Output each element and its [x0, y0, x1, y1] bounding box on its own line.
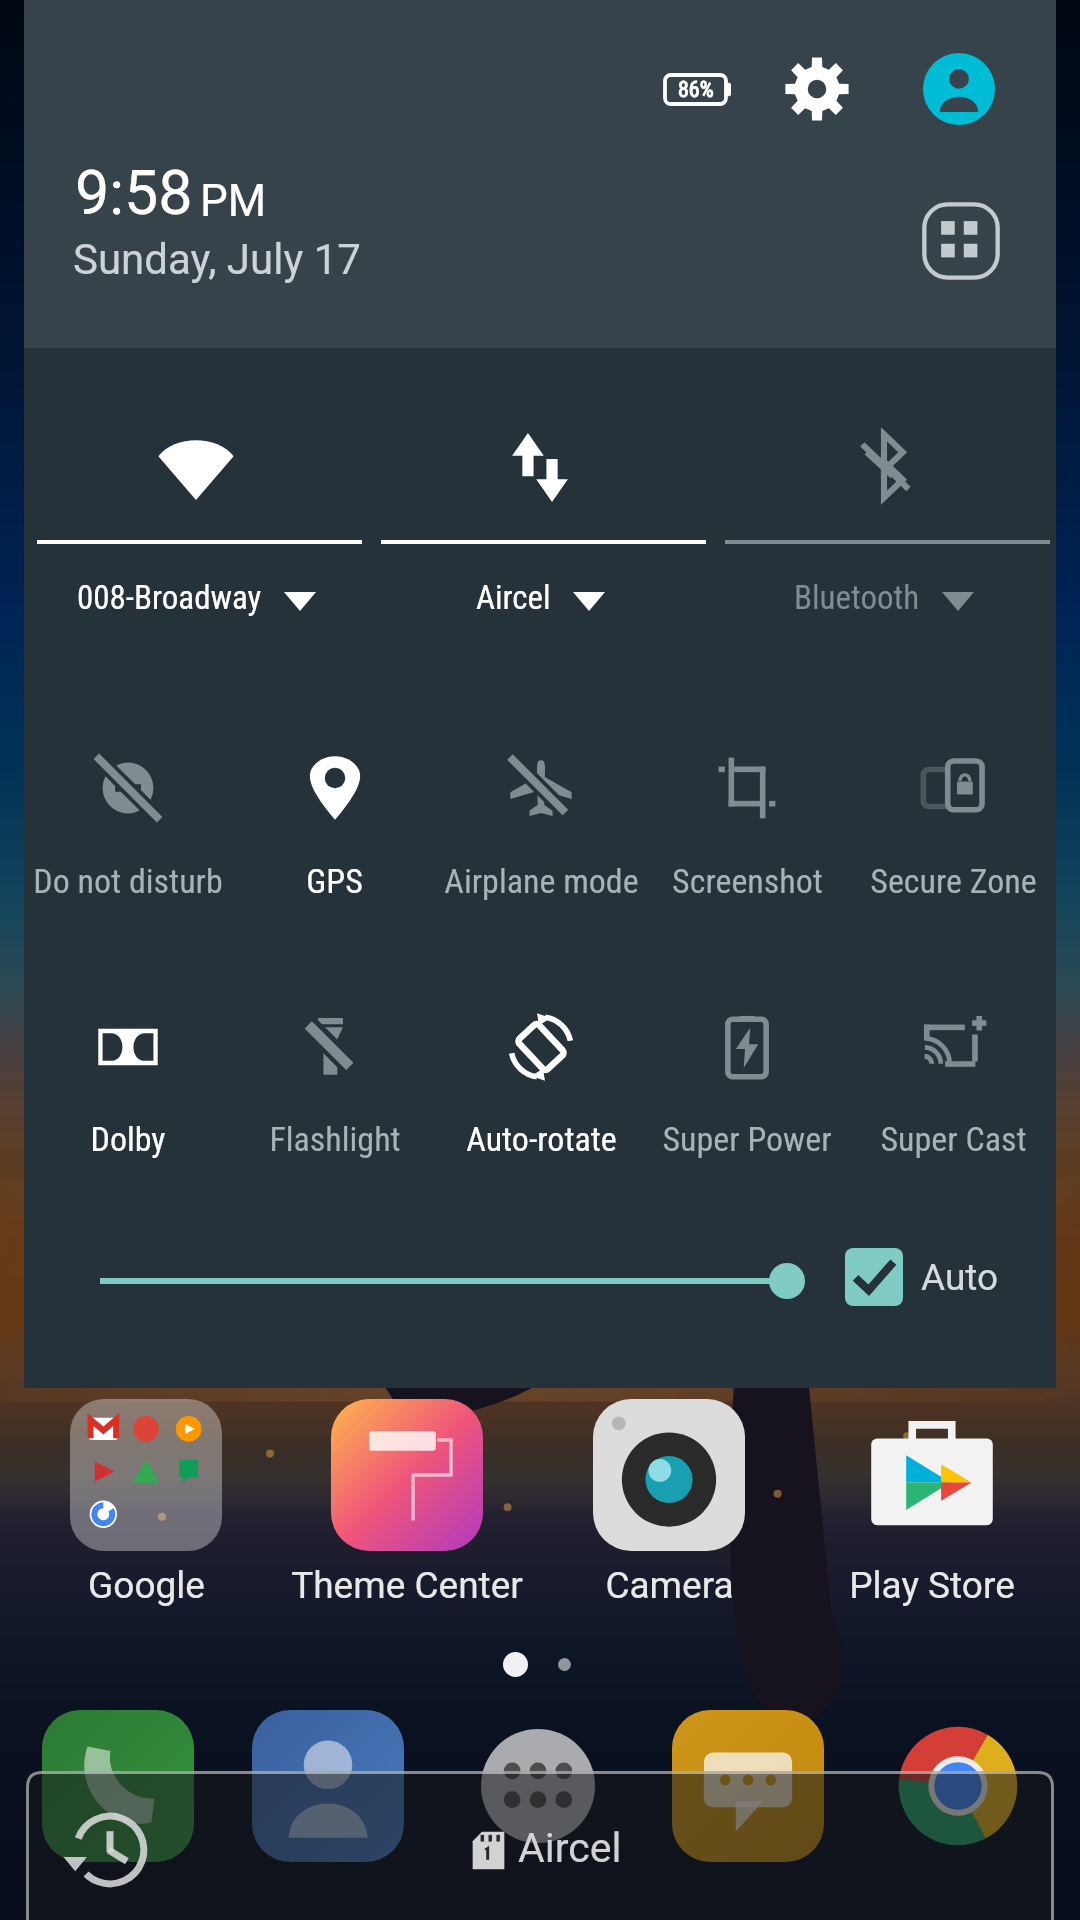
staticText: Airplane mode	[444, 861, 639, 901]
staticText: 9:58	[75, 157, 193, 228]
button[interactable]: Aircel	[368, 348, 712, 638]
button[interactable]: Settings	[772, 44, 862, 134]
button[interactable]: Airplane mode	[438, 755, 644, 918]
button[interactable]: Do not disturb	[24, 755, 231, 918]
button[interactable]: Secure Zone	[850, 755, 1056, 918]
staticText: Screenshot	[672, 861, 823, 901]
staticText: Aircel	[518, 1824, 622, 1872]
staticText: Camera	[605, 1564, 734, 1607]
button[interactable]: Edit quick settings	[911, 191, 1011, 291]
button[interactable]: Auto-rotate	[438, 1014, 644, 1176]
staticText: Auto-rotate	[466, 1119, 617, 1159]
button[interactable]: Google	[70, 1399, 222, 1624]
button[interactable]: Battery 86 percent	[649, 59, 748, 120]
button[interactable]: Bluetooth	[712, 348, 1056, 638]
staticText: Bluetooth	[794, 578, 920, 617]
staticText: Auto	[921, 1256, 999, 1299]
staticText: Play Store	[849, 1564, 1015, 1607]
staticText: Flashlight	[269, 1119, 401, 1159]
button[interactable]: GPS	[231, 755, 438, 918]
staticText: Dolby	[90, 1119, 166, 1159]
staticText: 008-Broadway	[77, 578, 262, 617]
staticText: PM	[200, 175, 267, 227]
button[interactable]: Super Cast	[850, 1014, 1056, 1176]
staticText: GPS	[306, 861, 363, 901]
button[interactable]: Super Power	[644, 1014, 850, 1176]
staticText: Sunday, July 17	[73, 235, 361, 284]
staticText: Super Power	[662, 1119, 832, 1159]
staticText: Secure Zone	[870, 861, 1037, 901]
button[interactable]: User profile	[923, 53, 995, 125]
staticText: Google	[88, 1564, 205, 1607]
staticText: Aircel	[476, 578, 551, 617]
button[interactable]: 008-Broadway	[24, 348, 368, 638]
button[interactable]: Dolby	[24, 1014, 231, 1176]
staticText: Theme Center	[291, 1564, 523, 1607]
staticText: 86%	[678, 77, 714, 103]
button[interactable]: Play Store	[856, 1399, 1008, 1624]
staticText: Do not disturb	[33, 861, 223, 901]
staticText: Super Cast	[880, 1119, 1027, 1159]
button[interactable]: Screenshot	[644, 755, 850, 918]
button[interactable]: Brightness	[52, 1248, 836, 1314]
button[interactable]: Theme Center	[331, 1399, 483, 1624]
button[interactable]: Auto	[845, 1248, 999, 1306]
button[interactable]: Flashlight	[231, 1014, 438, 1176]
button[interactable]: Camera	[593, 1399, 745, 1624]
